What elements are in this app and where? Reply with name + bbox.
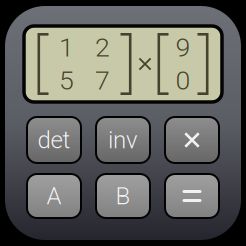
staticText: 9: [175, 32, 190, 63]
staticText: 2: [95, 32, 110, 63]
staticText: B: [115, 182, 130, 210]
button[interactable]: A: [27, 174, 81, 218]
button[interactable]: inv: [96, 117, 150, 163]
button[interactable]: B: [96, 174, 150, 218]
staticText: det: [37, 126, 70, 154]
button[interactable]: det: [27, 117, 81, 163]
staticText: 5: [59, 65, 74, 96]
staticText: 1: [59, 32, 74, 63]
button[interactable]: Multiply: [165, 117, 219, 163]
staticText: 0: [175, 65, 190, 96]
staticText: inv: [108, 126, 138, 154]
staticText: A: [46, 182, 61, 210]
button[interactable]: Equals: [165, 174, 219, 218]
staticText: 7: [95, 65, 110, 96]
